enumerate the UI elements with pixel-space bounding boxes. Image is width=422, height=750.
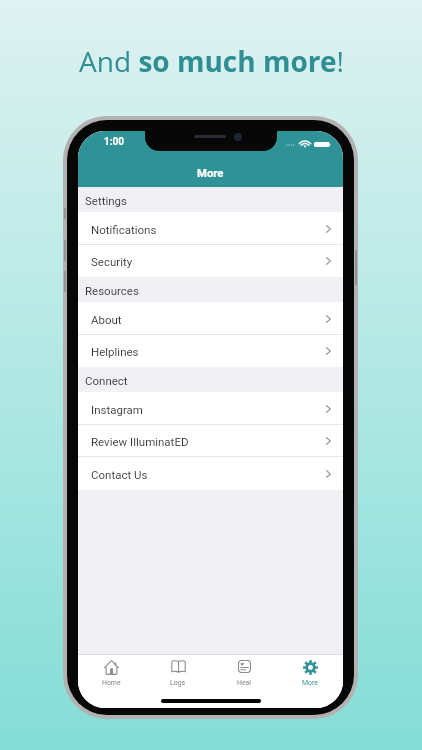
staticText: Security [91,255,133,268]
button[interactable]: Contact Us [78,457,343,490]
staticText: Instagram [91,403,143,416]
button[interactable]: Instagram [78,392,343,425]
other: Wi-Fi [300,140,310,148]
staticText: More [302,679,318,687]
button[interactable]: Heal [211,654,277,708]
button[interactable]: Helplines [78,334,343,367]
staticText: 1:00 [104,136,125,148]
button[interactable]: Logs [145,654,211,708]
button[interactable]: Notifications [78,212,343,245]
other: Battery [314,142,331,147]
staticText: Logs [170,679,186,687]
staticText: Helplines [91,345,139,358]
staticText: Settings [85,194,127,207]
button[interactable]: About [78,302,343,335]
staticText: Notifications [91,223,157,236]
staticText: Home [102,679,121,687]
staticText: Contact Us [91,468,148,481]
staticText: Resources [85,284,139,297]
staticText: Connect [85,374,128,387]
button[interactable]: Security [78,244,343,277]
staticText: Review IlluminatED [91,435,189,448]
staticText: And so much more! [79,42,344,80]
button[interactable]: Review IlluminatED [78,424,343,457]
staticText: More [197,167,224,180]
staticText: About [91,313,122,326]
staticText: Heal [237,679,251,687]
button[interactable]: More [277,654,343,708]
button[interactable]: Home [78,654,145,708]
